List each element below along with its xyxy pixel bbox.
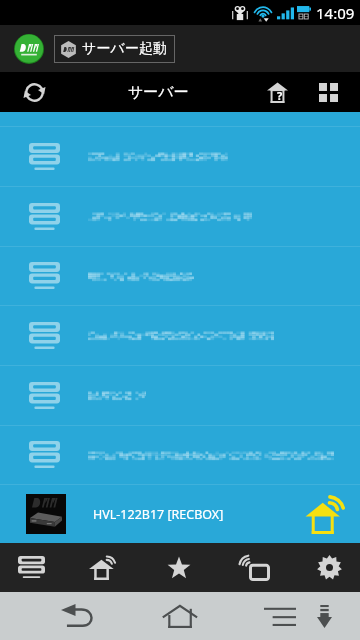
- button[interactable]: Home: [145, 592, 217, 640]
- staticText: サーバー: [128, 83, 189, 102]
- button[interactable]: Menu: [255, 592, 305, 640]
- button[interactable]: [0, 306, 360, 365]
- staticText: HVL-122B17 [RECBOX]: [93, 506, 224, 523]
- button[interactable]: [0, 426, 360, 484]
- button[interactable]: Settings: [293, 543, 360, 592]
- button[interactable]: Favourites: [144, 543, 216, 592]
- staticText: 14:09: [316, 3, 355, 23]
- button[interactable]: Back: [41, 592, 113, 640]
- button[interactable]: Home network: [69, 543, 141, 592]
- button[interactable]: Cast: [219, 543, 291, 592]
- button[interactable]: [0, 247, 360, 305]
- button[interactable]: Grid view: [308, 72, 348, 112]
- button[interactable]: [0, 127, 360, 186]
- staticText: サーバー起動: [82, 40, 167, 58]
- button[interactable]: Home help: [260, 72, 300, 112]
- button[interactable]: Refresh: [14, 72, 54, 112]
- staticText: ?: [277, 88, 283, 103]
- button[interactable]: [0, 187, 360, 246]
- button[interactable]: [0, 366, 360, 425]
- button[interactable]: Downloads: [301, 592, 347, 640]
- button[interactable]: Servers: [0, 543, 67, 592]
- button[interactable]: HVL-122B17 [RECBOX]: [0, 485, 360, 543]
